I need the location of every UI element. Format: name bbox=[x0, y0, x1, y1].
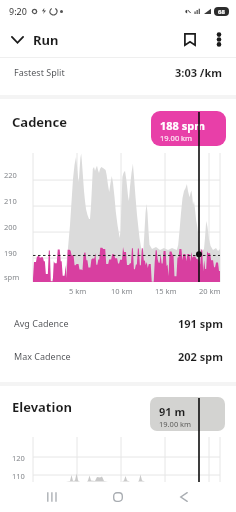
staticText: 210 bbox=[4, 196, 17, 206]
staticText: 91 m bbox=[159, 404, 186, 419]
staticText: 68 bbox=[218, 8, 225, 16]
staticText: 190 bbox=[4, 248, 17, 258]
staticText: 220 bbox=[4, 170, 17, 180]
staticText: 5 km bbox=[69, 286, 87, 296]
button[interactable]: Collapse bbox=[5, 22, 30, 57]
button[interactable]: Back bbox=[168, 482, 200, 512]
button[interactable]: Recent apps bbox=[36, 482, 68, 512]
staticText: 10 km bbox=[111, 286, 133, 296]
staticText: Max Cadence bbox=[14, 350, 71, 362]
staticText: Cadence bbox=[12, 113, 68, 131]
staticText: Run bbox=[33, 31, 59, 49]
staticText: 200 bbox=[4, 222, 17, 232]
staticText: 9:20 bbox=[9, 5, 27, 17]
button[interactable]: Bookmark bbox=[177, 22, 203, 57]
staticText: 202 spm bbox=[178, 349, 223, 364]
button[interactable]: Fastest Split bbox=[0, 58, 236, 95]
staticText: 110 bbox=[12, 471, 25, 481]
button[interactable]: More options bbox=[206, 22, 232, 57]
staticText: 20 km bbox=[199, 286, 221, 296]
staticText: Elevation bbox=[12, 398, 72, 416]
staticText: 15 km bbox=[155, 286, 177, 296]
staticText: 191 spm bbox=[178, 316, 223, 331]
staticText: 188 spm bbox=[160, 118, 205, 133]
button[interactable]: Avg Cadence bbox=[0, 303, 236, 336]
staticText: 120 bbox=[12, 453, 25, 463]
staticText: Avg Cadence bbox=[14, 317, 69, 329]
button[interactable]: Max Cadence bbox=[0, 336, 236, 369]
staticText: Fastest Split bbox=[14, 66, 65, 78]
staticText: 3:03 /km bbox=[175, 65, 222, 80]
staticText: spm bbox=[4, 272, 20, 282]
button[interactable]: Home bbox=[102, 482, 134, 512]
staticText: 19.00 km bbox=[159, 419, 192, 429]
staticText: 19.00 km bbox=[160, 133, 193, 143]
